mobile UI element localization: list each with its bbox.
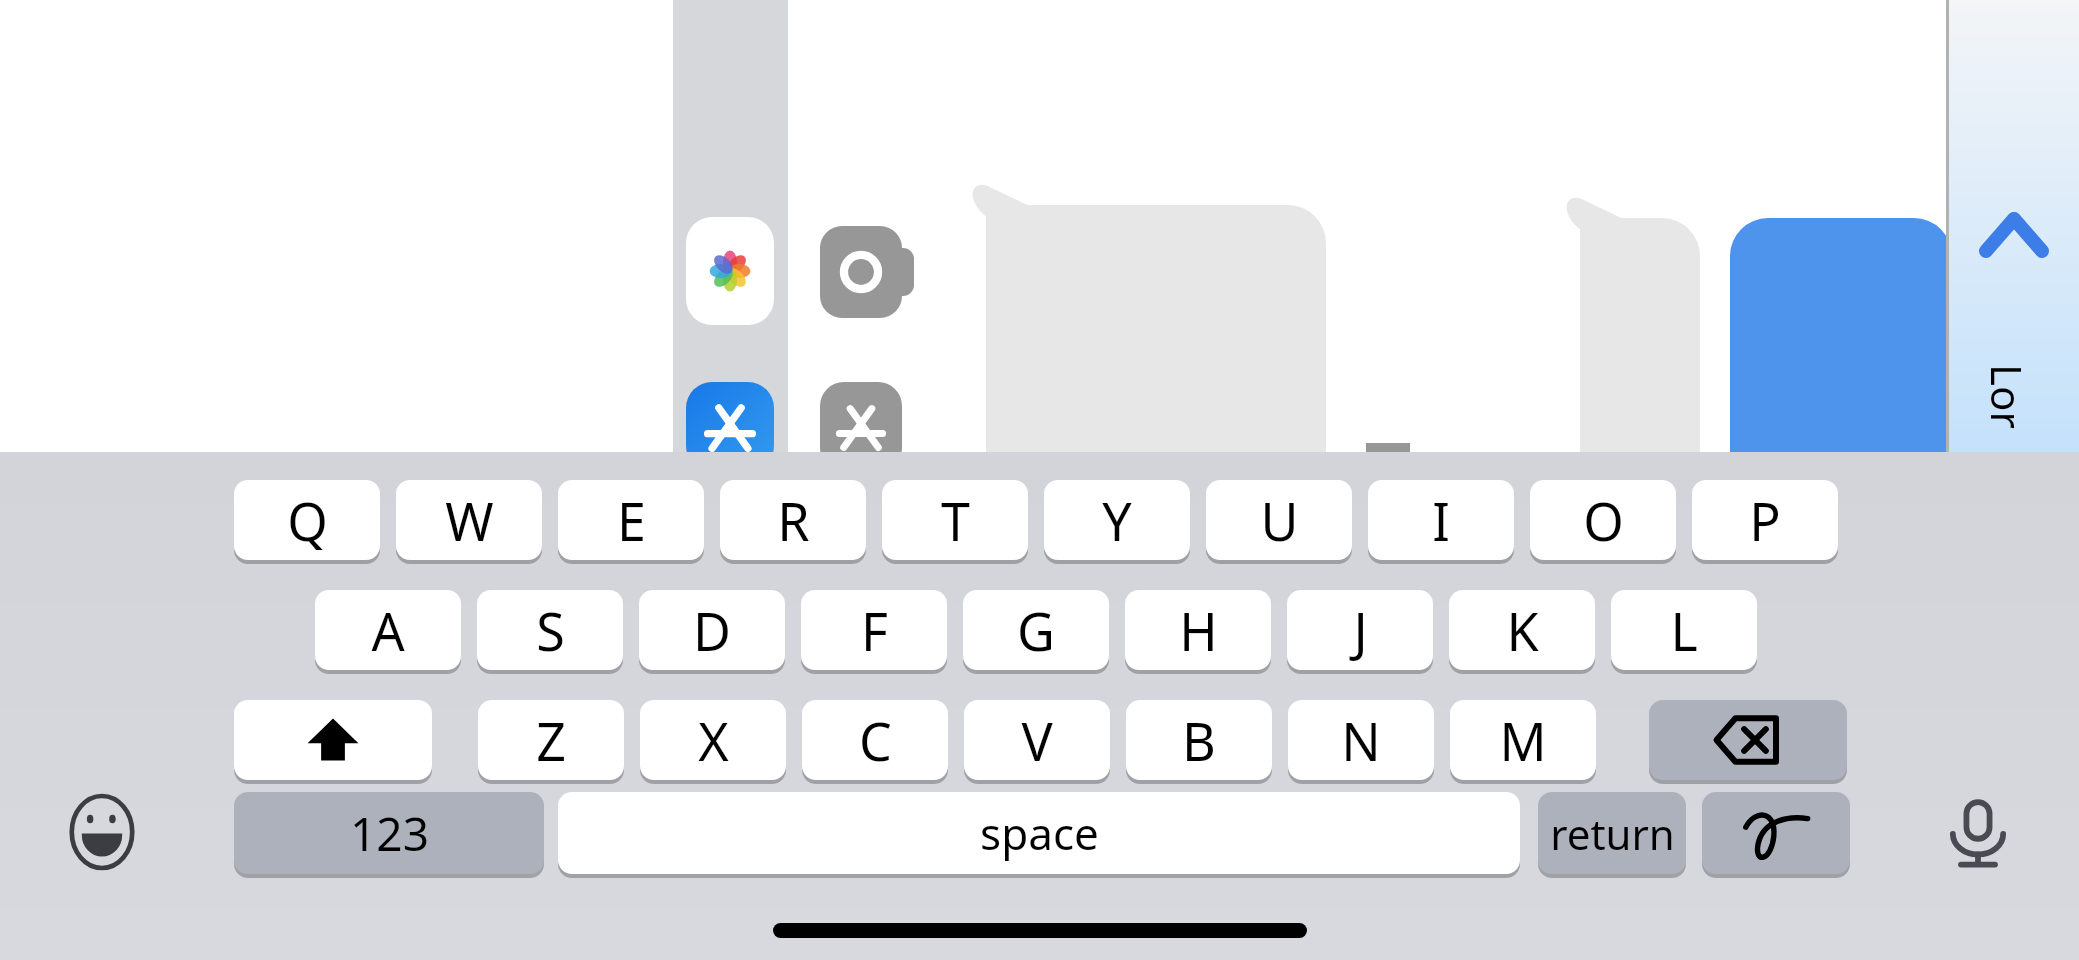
staticText: Y bbox=[1102, 485, 1132, 556]
staticText: A bbox=[371, 595, 405, 666]
staticText: Lor bbox=[1979, 364, 2036, 429]
button[interactable]: X bbox=[640, 700, 786, 780]
staticText: C bbox=[859, 705, 892, 776]
button[interactable]: A bbox=[315, 590, 461, 670]
button[interactable]: V bbox=[964, 700, 1110, 780]
button[interactable]: 123 bbox=[234, 792, 544, 874]
staticText: G bbox=[1017, 595, 1055, 666]
staticText: V bbox=[1021, 705, 1053, 776]
button[interactable]: T bbox=[882, 480, 1028, 560]
staticText: B bbox=[1182, 705, 1216, 776]
button[interactable]: Delete bbox=[1649, 700, 1847, 780]
button[interactable]: L bbox=[1611, 590, 1757, 670]
staticText: Z bbox=[536, 705, 566, 776]
button[interactable]: Z bbox=[478, 700, 624, 780]
button[interactable]: E bbox=[558, 480, 704, 560]
button[interactable]: Q bbox=[234, 480, 380, 560]
button[interactable]: Camera bbox=[820, 226, 902, 318]
staticText: R bbox=[777, 485, 810, 556]
button[interactable]: W bbox=[396, 480, 542, 560]
staticText: sending bbox=[1166, 523, 1237, 599]
staticText: 123 bbox=[350, 802, 429, 865]
staticText: P bbox=[1749, 485, 1781, 556]
button[interactable]: C bbox=[802, 700, 948, 780]
staticText: X bbox=[698, 705, 729, 776]
staticText: D bbox=[693, 595, 731, 666]
button[interactable]: B bbox=[1126, 700, 1272, 780]
staticText: W bbox=[445, 485, 494, 556]
button[interactable]: K bbox=[1449, 590, 1595, 670]
staticText: U bbox=[1260, 485, 1299, 556]
staticText: Q bbox=[287, 485, 328, 556]
button[interactable]: Shift bbox=[234, 700, 432, 780]
staticText: I bbox=[1432, 485, 1450, 556]
staticText: T bbox=[941, 485, 970, 556]
button[interactable]: Photos bbox=[686, 217, 774, 325]
button[interactable]: I bbox=[1368, 480, 1514, 560]
staticText: L bbox=[1670, 595, 1698, 666]
button[interactable]: O bbox=[1530, 480, 1676, 560]
button[interactable]: sense t bbox=[986, 205, 1326, 605]
button[interactable]: F bbox=[801, 590, 947, 670]
staticText: Thanks bbox=[1242, 523, 1313, 599]
button[interactable]: J bbox=[1287, 590, 1433, 670]
button[interactable]: R bbox=[720, 480, 866, 560]
button[interactable]: M bbox=[1450, 700, 1596, 780]
button[interactable]: fertile g bbox=[1730, 218, 1952, 608]
button[interactable]: App Store bbox=[820, 382, 902, 472]
button[interactable]: Oh dea bbox=[1580, 218, 1700, 608]
button[interactable]: P bbox=[1692, 480, 1838, 560]
staticText: M bbox=[1499, 705, 1547, 776]
button[interactable]: D bbox=[639, 590, 785, 670]
staticText: N bbox=[1341, 705, 1381, 776]
button[interactable]: U bbox=[1206, 480, 1352, 560]
button[interactable]: H bbox=[1125, 590, 1271, 670]
staticText: E bbox=[617, 485, 646, 556]
button[interactable]: space bbox=[558, 792, 1520, 874]
button[interactable]: App Store bbox=[686, 382, 774, 472]
button[interactable]: Dictate bbox=[1932, 788, 2024, 880]
staticText: J bbox=[1353, 595, 1368, 666]
button[interactable]: Expand bbox=[1979, 212, 2049, 258]
staticText: return bbox=[1550, 805, 1675, 862]
staticText: space bbox=[980, 803, 1099, 863]
staticText: doesn't bbox=[1090, 523, 1161, 599]
staticText: F bbox=[861, 595, 888, 666]
staticText: K bbox=[1506, 595, 1539, 666]
button[interactable]: N bbox=[1288, 700, 1434, 780]
staticText: H bbox=[1179, 595, 1218, 666]
staticText: Oh dea bbox=[1616, 526, 1687, 602]
button[interactable]: S bbox=[477, 590, 623, 670]
staticText: S bbox=[536, 595, 565, 666]
staticText: fertile g bbox=[1742, 526, 1813, 602]
button[interactable]: Handwriting bbox=[1702, 792, 1850, 874]
button[interactable]: Y bbox=[1044, 480, 1190, 560]
button[interactable]: Emoji bbox=[58, 788, 146, 876]
staticText: O bbox=[1583, 485, 1624, 556]
staticText: sense t bbox=[1014, 523, 1085, 599]
button[interactable]: return bbox=[1538, 792, 1686, 874]
staticText: for a co bbox=[1818, 526, 1889, 602]
button[interactable]: G bbox=[963, 590, 1109, 670]
